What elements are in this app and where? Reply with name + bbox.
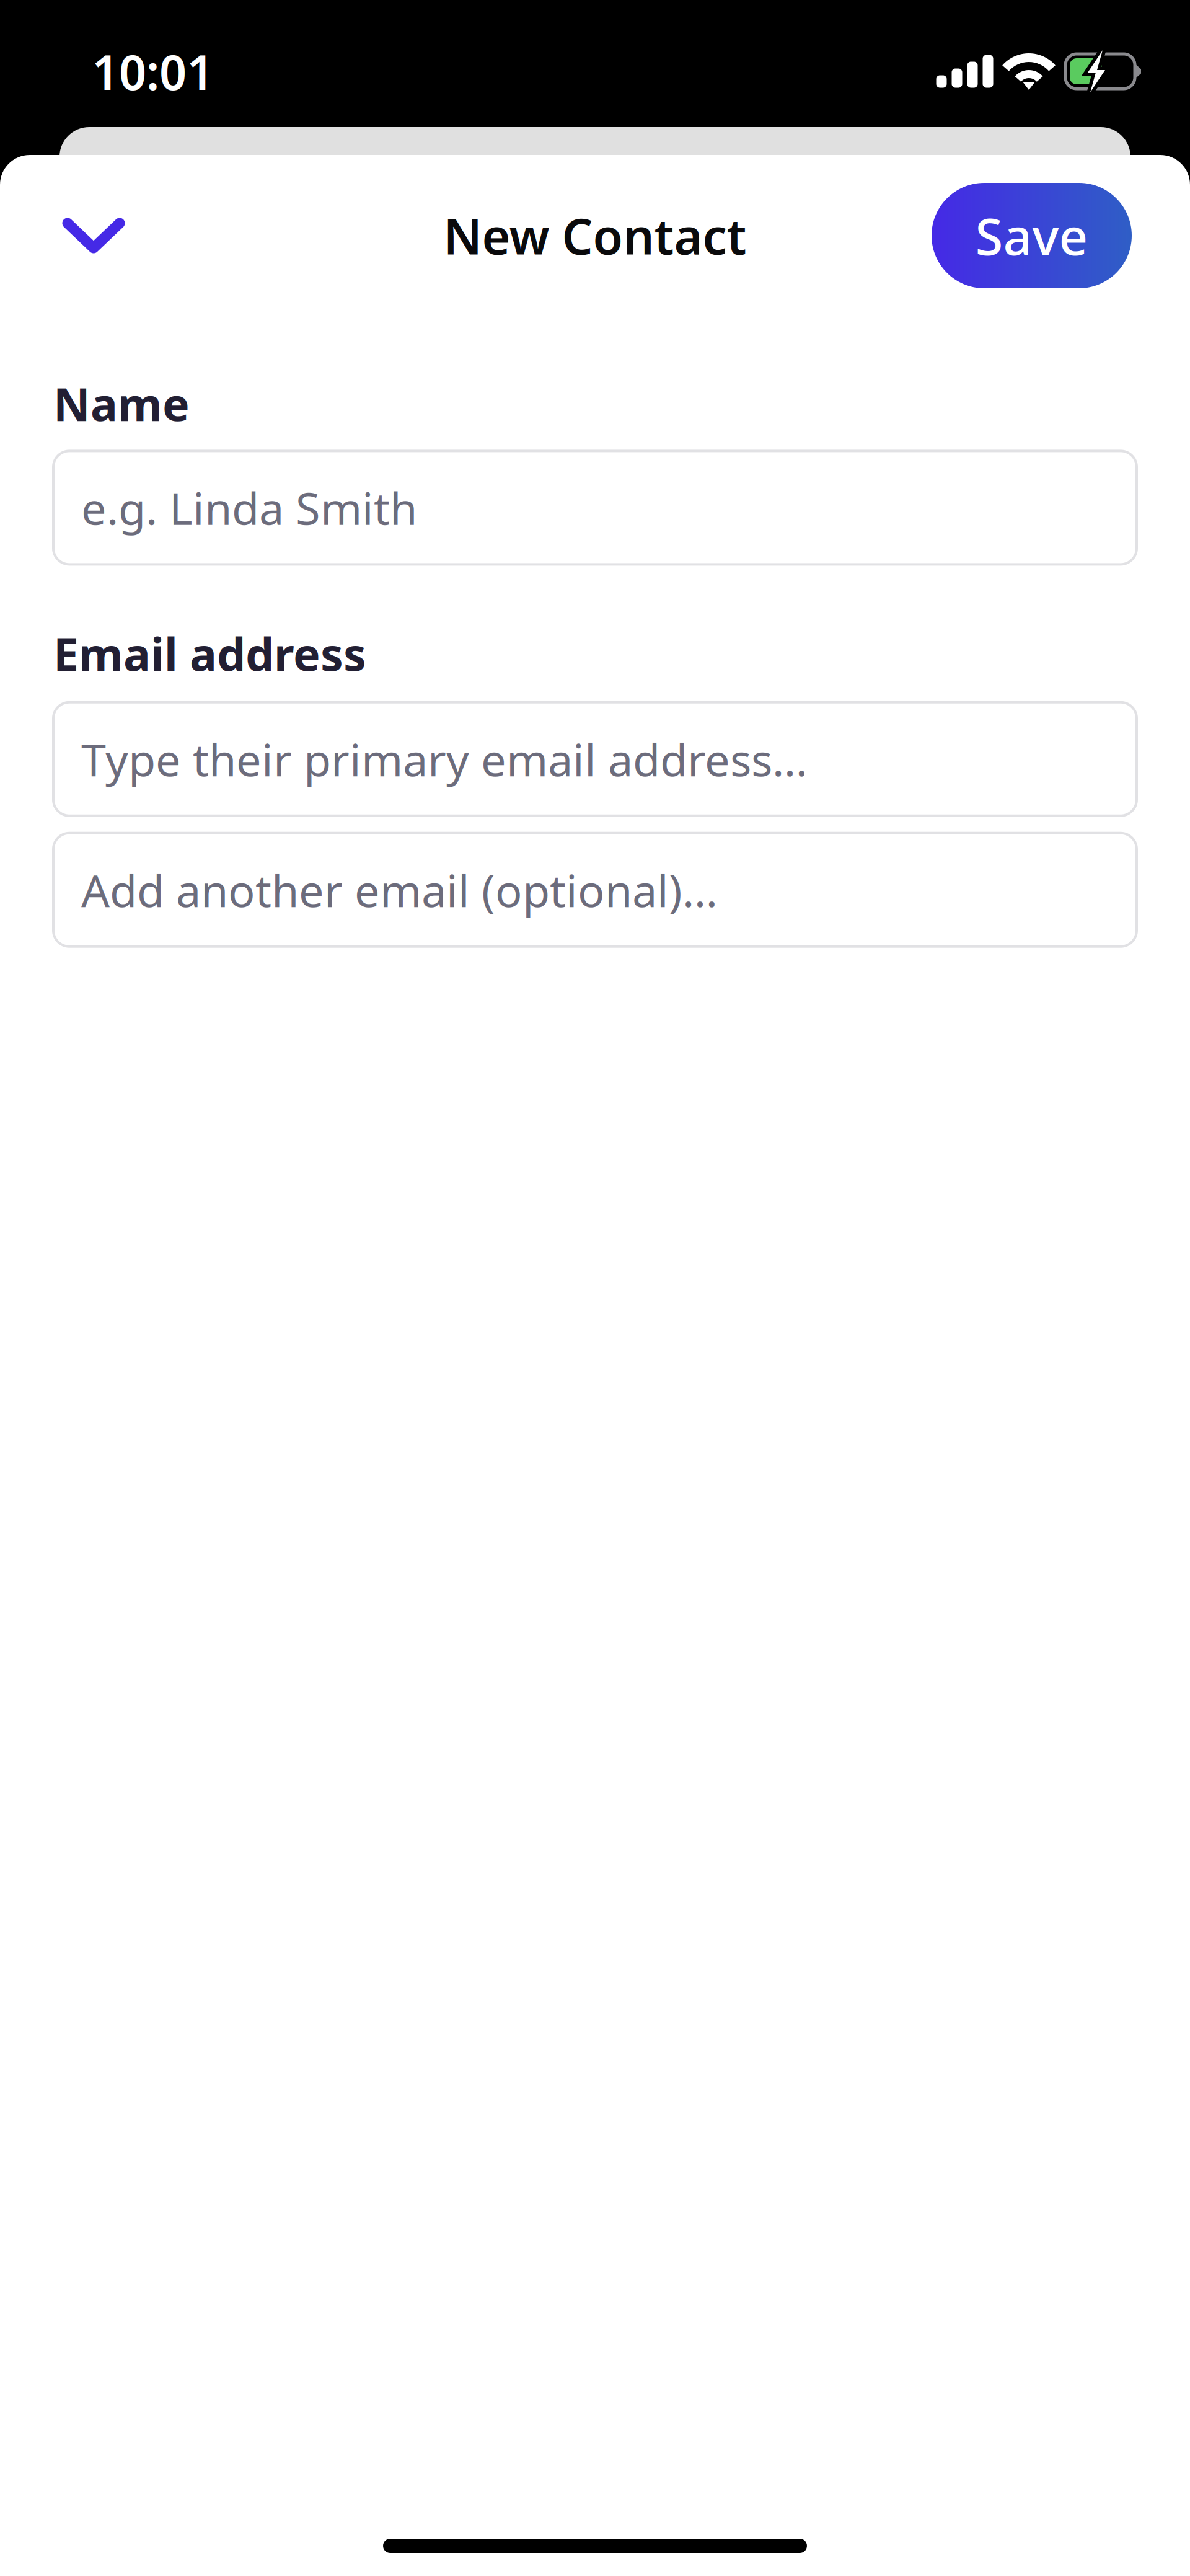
staticText: Add another email (optional)… [81, 860, 718, 919]
staticText: e.g. Linda Smith [81, 478, 417, 537]
button[interactable]: Type their primary email address… [53, 702, 1137, 816]
staticText: Type their primary email address… [81, 729, 808, 789]
staticText: New Contact [443, 203, 747, 268]
staticText: Email address [53, 623, 366, 684]
staticText: 10:01 [92, 39, 214, 103]
button[interactable]: Dismiss [45, 197, 143, 275]
staticText: Name [53, 373, 190, 434]
button[interactable]: e.g. Linda Smith [53, 451, 1137, 564]
button[interactable]: Save [932, 183, 1132, 288]
staticText: Save [975, 202, 1088, 269]
button[interactable]: Add another email (optional)… [53, 833, 1137, 947]
